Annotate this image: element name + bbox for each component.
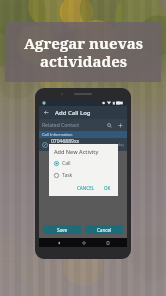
button[interactable]: OK xyxy=(102,184,113,192)
button[interactable]: Add xyxy=(116,121,124,129)
button[interactable]: 07046889xx xyxy=(39,138,127,151)
button[interactable]: Back xyxy=(54,238,63,247)
button[interactable]: Search xyxy=(105,121,113,129)
button[interactable]: Back xyxy=(42,108,51,117)
button[interactable]: Cancel xyxy=(85,225,123,234)
staticText: Call Information xyxy=(42,132,73,137)
staticText: CANCEL xyxy=(77,185,95,191)
staticText: Related Contact xyxy=(42,122,80,129)
button[interactable]: Task xyxy=(54,172,113,179)
staticText: Cancel xyxy=(97,227,112,233)
button[interactable]: Call xyxy=(54,160,113,167)
button[interactable]: Home xyxy=(79,238,88,247)
staticText: Agregar nuevas actividades xyxy=(24,33,143,72)
staticText: Task xyxy=(62,172,73,179)
button[interactable]: Save xyxy=(43,225,81,234)
staticText: OK xyxy=(104,185,111,191)
staticText: Call xyxy=(62,160,71,167)
staticText: 07046889xx xyxy=(51,138,80,145)
button[interactable]: Recents xyxy=(103,238,112,247)
staticText: Save xyxy=(57,227,68,233)
staticText: Add Call Log xyxy=(55,109,91,117)
button[interactable]: CANCEL xyxy=(75,184,97,192)
staticText: Mobile 11:34 xyxy=(51,146,77,151)
staticText: Add New Activity xyxy=(54,148,99,155)
staticText: yesterday xyxy=(108,142,124,147)
